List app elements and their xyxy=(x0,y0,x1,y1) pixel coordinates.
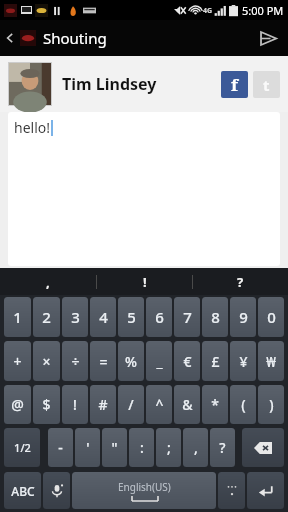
staticText: 8 xyxy=(211,307,220,327)
button[interactable]: Enter xyxy=(247,472,284,509)
staticText: £ xyxy=(211,352,220,371)
staticText: ¥ xyxy=(239,352,248,371)
staticText: @ xyxy=(11,395,24,414)
button[interactable]: ' xyxy=(75,428,100,467)
button[interactable]: ! xyxy=(62,385,88,424)
button[interactable]: 1 xyxy=(4,297,31,337)
button[interactable]: ; xyxy=(156,428,181,467)
staticText: ) xyxy=(269,395,274,414)
button[interactable]: ^ xyxy=(146,385,172,424)
button[interactable]: ₩ xyxy=(258,341,284,381)
button[interactable]: " xyxy=(102,428,127,467)
button[interactable]: ( xyxy=(230,385,256,424)
button[interactable]: 1/2 xyxy=(4,428,40,467)
button[interactable]: Symbols xyxy=(218,472,245,509)
button[interactable]: 4 xyxy=(90,297,116,337)
staticText: ÷ xyxy=(71,352,80,371)
button[interactable]: $ xyxy=(33,385,60,424)
staticText: 6 xyxy=(155,307,164,327)
staticText: ? xyxy=(219,438,226,457)
button[interactable]: Backspace xyxy=(242,428,284,467)
staticText: hello! xyxy=(14,118,51,137)
staticText: ABC xyxy=(11,483,35,499)
button[interactable]: * xyxy=(202,385,228,424)
button[interactable]: - xyxy=(48,428,73,467)
button[interactable]: _ xyxy=(146,341,172,381)
button[interactable]: Voice input xyxy=(43,472,70,509)
button[interactable]: 2 xyxy=(33,297,60,337)
button[interactable]: 5 xyxy=(118,297,144,337)
button[interactable]: 0 xyxy=(258,297,284,337)
button[interactable]: Send xyxy=(248,20,288,56)
button[interactable]: £ xyxy=(202,341,228,381)
button[interactable]: ABC xyxy=(4,472,41,509)
staticText: , xyxy=(194,438,198,457)
staticText: 1 xyxy=(13,307,22,327)
staticText: f xyxy=(231,73,238,96)
button[interactable]: 9 xyxy=(230,297,256,337)
button[interactable]: # xyxy=(90,385,116,424)
staticText: _ xyxy=(156,352,163,371)
staticText: * xyxy=(211,395,219,414)
button[interactable]: hello! xyxy=(8,112,280,266)
button[interactable]: ? xyxy=(193,268,288,295)
button[interactable]: 8 xyxy=(202,297,228,337)
staticText: t xyxy=(263,75,270,95)
staticText: Shouting xyxy=(43,28,107,48)
button[interactable]: : xyxy=(129,428,154,467)
button[interactable]: × xyxy=(33,341,60,381)
button[interactable]: 6 xyxy=(146,297,172,337)
button[interactable]: ? xyxy=(210,428,235,467)
staticText: 2 xyxy=(42,307,51,327)
staticText: , xyxy=(46,273,50,291)
staticText: + xyxy=(13,352,22,371)
button[interactable]: & xyxy=(174,385,200,424)
staticText: 5 xyxy=(127,307,136,327)
button[interactable]: = xyxy=(90,341,116,381)
button[interactable]: + xyxy=(4,341,31,381)
staticText: 0 xyxy=(267,307,276,327)
staticText: # xyxy=(98,395,108,414)
button[interactable]: ¥ xyxy=(230,341,256,381)
button[interactable]: ) xyxy=(258,385,284,424)
button[interactable]: Back xyxy=(0,20,111,56)
button[interactable]: ! xyxy=(97,268,192,295)
staticText: ^ xyxy=(155,395,164,414)
staticText: 1/2 xyxy=(14,440,31,455)
button[interactable]: % xyxy=(118,341,144,381)
staticText: Tim Lindsey xyxy=(62,73,157,95)
staticText: 4 xyxy=(99,307,108,327)
staticText: ( xyxy=(241,395,246,414)
button[interactable]: / xyxy=(118,385,144,424)
staticText: ' xyxy=(86,438,90,457)
staticText: € xyxy=(183,352,192,371)
button[interactable]: 3 xyxy=(62,297,88,337)
button[interactable]: Facebook xyxy=(221,71,248,98)
staticText: 5:00 PM xyxy=(242,3,284,18)
staticText: English(US) xyxy=(118,480,171,494)
staticText: ? xyxy=(237,273,244,291)
button[interactable]: ÷ xyxy=(62,341,88,381)
staticText: % xyxy=(125,352,137,371)
staticText: " xyxy=(111,438,118,457)
button[interactable]: Space xyxy=(72,472,216,509)
button[interactable]: Twitter xyxy=(253,71,280,98)
staticText: $ xyxy=(42,395,51,414)
staticText: & xyxy=(182,395,193,414)
button[interactable]: @ xyxy=(4,385,31,424)
staticText: 3 xyxy=(71,307,80,327)
staticText: ₩ xyxy=(266,352,276,371)
staticText: / xyxy=(128,395,134,414)
button[interactable]: , xyxy=(183,428,208,467)
staticText: ! xyxy=(73,395,77,414)
button[interactable]: 7 xyxy=(174,297,200,337)
staticText: × xyxy=(42,352,51,371)
button[interactable]: , xyxy=(0,268,96,295)
staticText: = xyxy=(99,352,108,371)
staticText: ! xyxy=(143,273,147,291)
staticText: : xyxy=(140,438,144,457)
button[interactable]: € xyxy=(174,341,200,381)
staticText: 7 xyxy=(183,307,192,327)
staticText: - xyxy=(58,438,63,457)
staticText: 4G xyxy=(203,6,213,16)
